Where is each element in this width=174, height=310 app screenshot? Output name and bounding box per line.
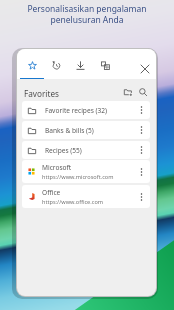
button[interactable]: Recipes (55) <box>22 141 150 159</box>
button[interactable]: Favorites <box>20 58 44 79</box>
button[interactable]: Downloads <box>68 58 92 79</box>
button[interactable]: More options <box>134 103 148 117</box>
button[interactable]: New folder <box>118 82 138 102</box>
button[interactable]: Banks & bills (5) <box>22 121 150 139</box>
staticText: Personalisasikan pengalaman penelusuran … <box>27 3 147 25</box>
staticText: Favorites <box>24 88 59 99</box>
button[interactable]: History <box>44 58 68 79</box>
button[interactable]: More options <box>134 190 148 204</box>
staticText: Favorite recipes (32) <box>45 106 108 115</box>
staticText: Office <box>42 188 61 197</box>
staticText: Recipes (55) <box>45 146 82 155</box>
staticText: https://www.office.com <box>42 198 104 206</box>
button[interactable]: Office <box>22 185 150 208</box>
button[interactable]: Favorite recipes (32) <box>22 101 150 119</box>
button[interactable]: More options <box>134 123 148 137</box>
button[interactable]: More options <box>134 165 148 179</box>
staticText: Microsoft <box>42 163 72 172</box>
button[interactable]: Search <box>133 82 153 102</box>
staticText: https://www.microsoft.com <box>42 173 114 181</box>
button[interactable]: Microsoft <box>22 160 150 183</box>
button[interactable]: Extensions <box>93 58 117 79</box>
staticText: Banks & bills (5) <box>45 126 94 135</box>
button[interactable]: More options <box>134 143 148 157</box>
button[interactable]: Close <box>133 58 156 80</box>
